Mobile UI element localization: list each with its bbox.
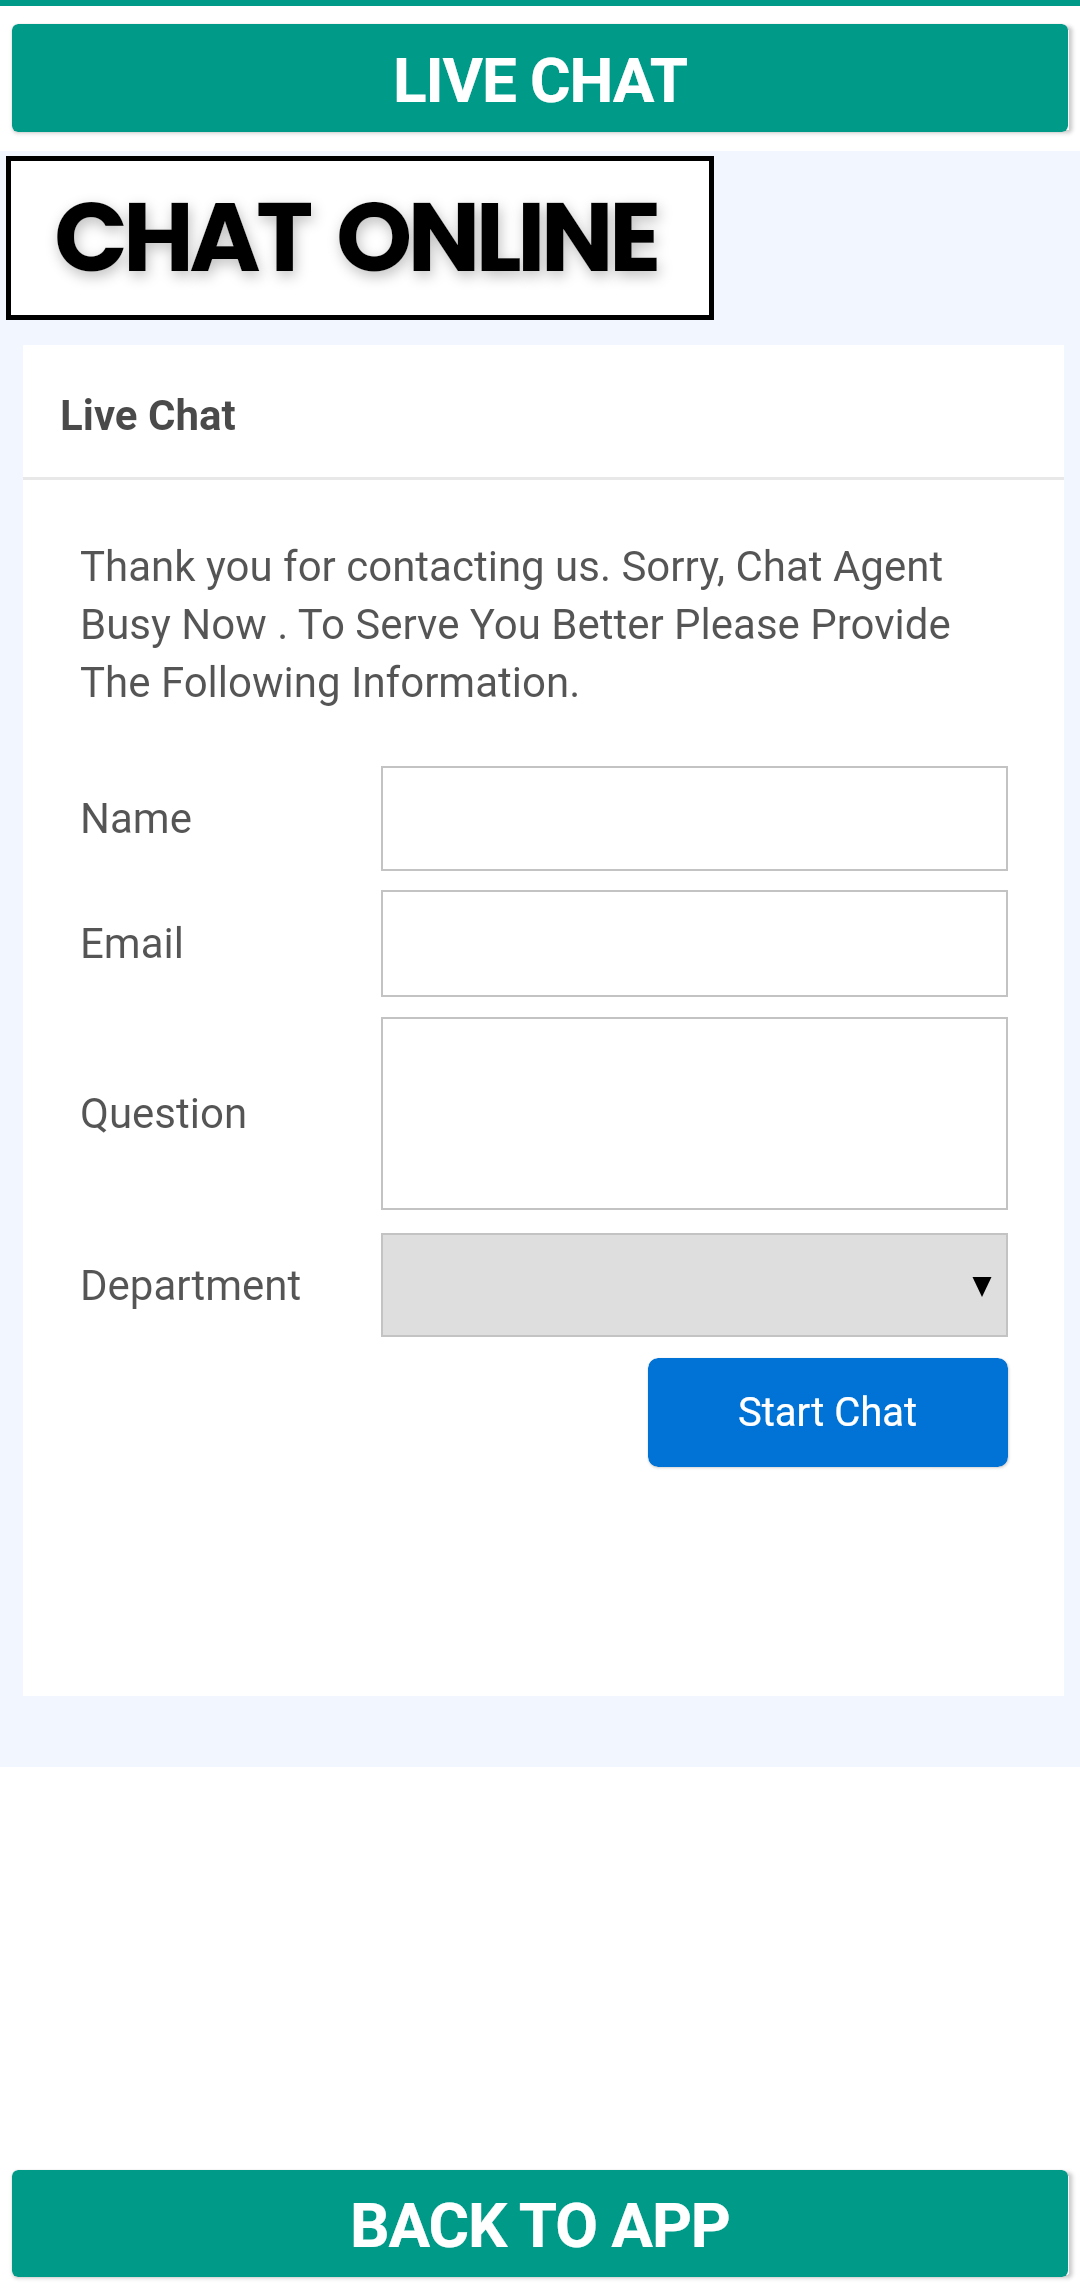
button[interactable]: Question field [381, 1017, 1008, 1210]
staticText: Email [80, 919, 184, 968]
button[interactable]: BACK TO APP [12, 2170, 1068, 2277]
button[interactable]: LIVE CHAT [12, 24, 1068, 132]
staticText: CHAT ONLINE [54, 169, 657, 305]
staticText: LIVE CHAT [393, 44, 688, 117]
button[interactable]: Start Chat [648, 1358, 1008, 1467]
staticText: Start Chat [738, 1389, 918, 1436]
button[interactable]: Name field [381, 766, 1008, 871]
staticText: Question [80, 1089, 248, 1138]
staticText: Name [80, 794, 192, 843]
staticText: Thank you for contacting us. Sorry, Chat… [80, 542, 1029, 707]
staticText: Department [80, 1261, 302, 1310]
staticText: BACK TO APP [350, 2189, 730, 2262]
staticText: Live Chat [60, 391, 236, 440]
button[interactable]: Department dropdown [381, 1233, 1008, 1337]
button[interactable]: Email field [381, 890, 1008, 997]
